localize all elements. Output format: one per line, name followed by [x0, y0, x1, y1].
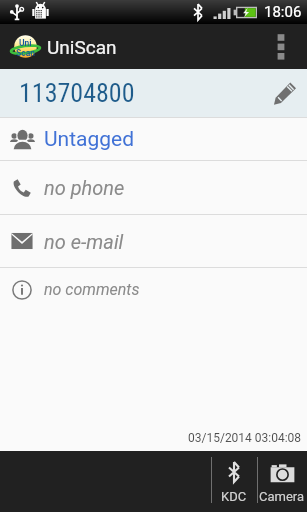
button[interactable]: no e-mail [0, 215, 307, 267]
staticText: KDC [221, 489, 247, 504]
staticText: Scan [16, 48, 35, 58]
button[interactable]: Untagged [0, 118, 307, 160]
staticText: Uni [19, 38, 32, 48]
staticText: no e-mail [44, 230, 124, 253]
staticText: no comments [44, 280, 140, 299]
staticText: Untagged [44, 127, 135, 152]
button[interactable]: Camera [257, 451, 307, 512]
button[interactable]: 113704800 [0, 69, 307, 117]
button[interactable]: no comments [0, 268, 307, 311]
button[interactable]: no phone [0, 161, 307, 214]
staticText: no phone [44, 176, 125, 199]
staticText: 113704800 [19, 78, 135, 108]
staticText: UniScan [47, 36, 117, 58]
staticText: Camera [259, 489, 305, 504]
button[interactable]: KDC [211, 451, 257, 512]
staticText: 03/15/2014 03:04:08 [188, 431, 302, 445]
button[interactable]: More options [254, 24, 307, 69]
staticText: 18:06 [264, 3, 302, 21]
button[interactable]: Edit [263, 69, 307, 117]
